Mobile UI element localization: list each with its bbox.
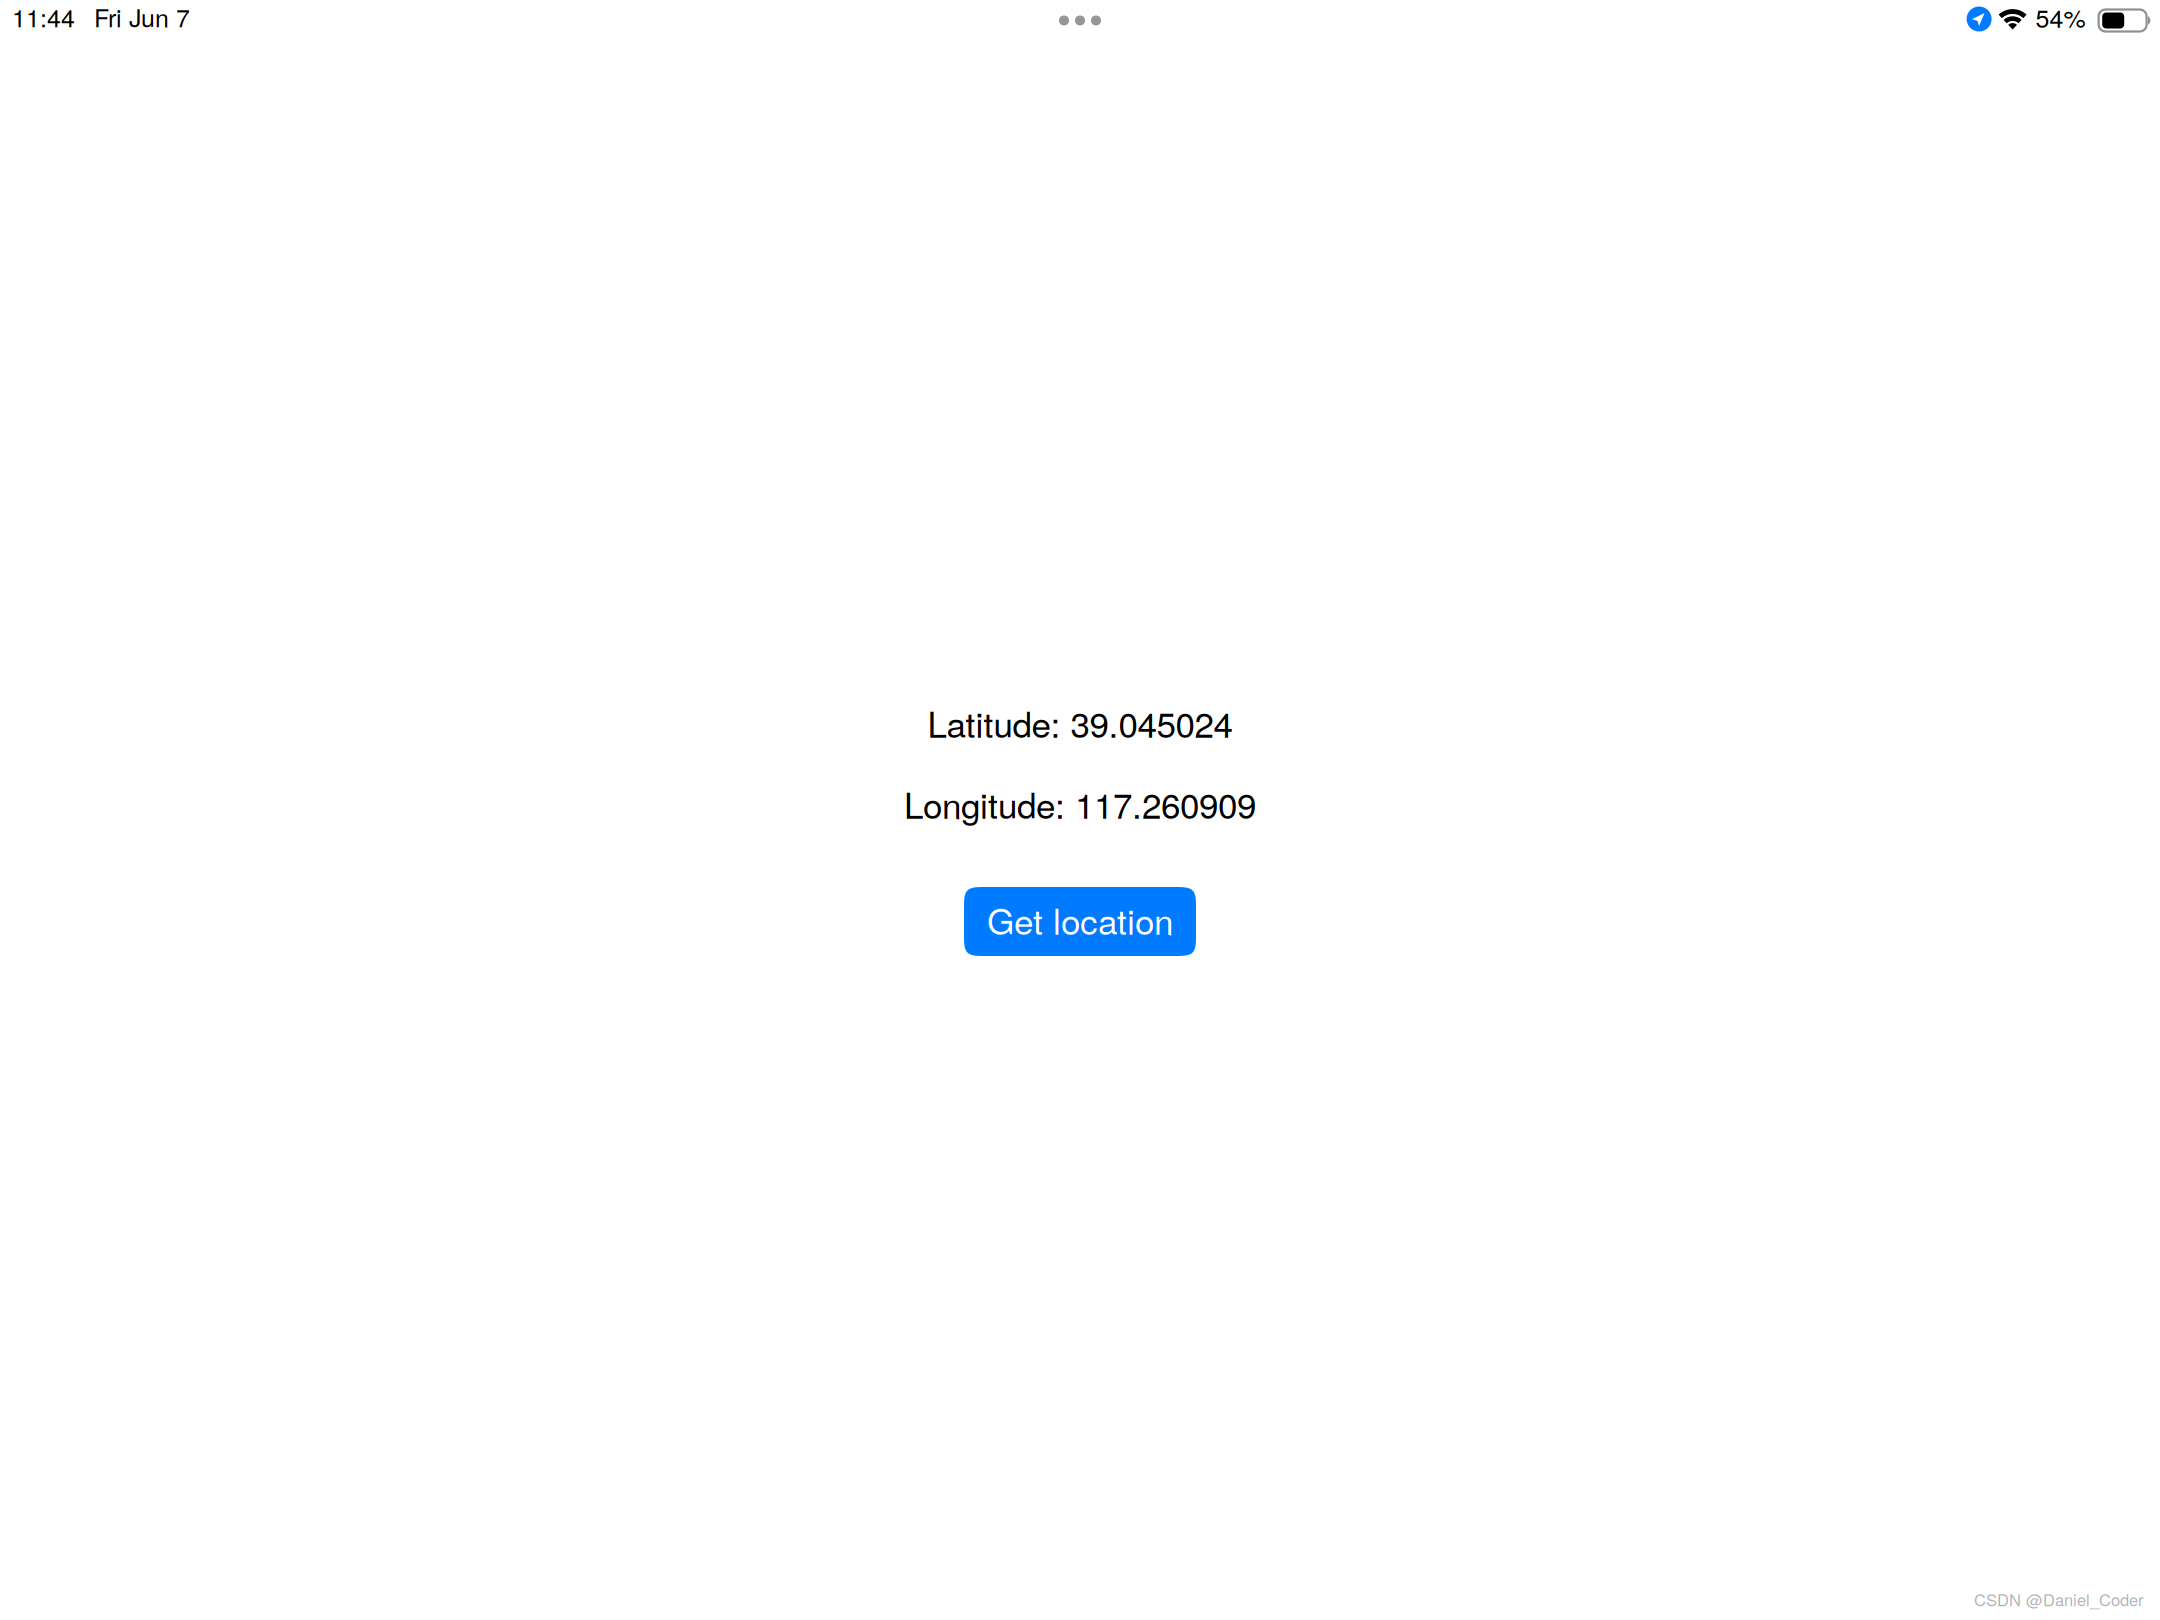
staticText: 54%	[2036, 0, 2086, 35]
button[interactable]: Multitasking controls	[1040, 0, 1120, 37]
staticText: Get location	[987, 894, 1173, 945]
staticText: Fri Jun 7	[94, 0, 190, 34]
staticText: Latitude: 39.045024	[927, 697, 1232, 748]
staticText: CSDN @Daniel_Coder	[1974, 1587, 2144, 1611]
staticText: 11:44	[12, 0, 75, 34]
button[interactable]: Get location	[964, 887, 1196, 956]
staticText: Longitude: 117.260909	[904, 778, 1256, 829]
